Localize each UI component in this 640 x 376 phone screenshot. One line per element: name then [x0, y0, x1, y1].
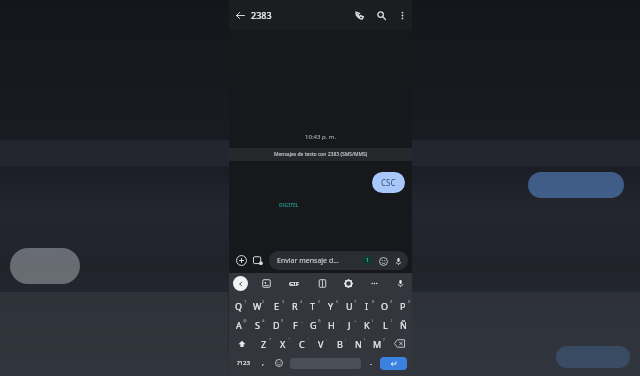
button[interactable]: R [286, 296, 304, 315]
staticText: @ [243, 318, 247, 323]
staticText: H [328, 319, 335, 331]
button[interactable]: GIF [285, 275, 303, 293]
button[interactable]: ?123 [232, 353, 255, 373]
button[interactable]: . [363, 353, 378, 373]
staticText: CSC [381, 177, 396, 188]
button[interactable]: D [267, 315, 286, 334]
button[interactable]: More [367, 276, 382, 291]
button[interactable]: B [330, 334, 349, 353]
staticText: 7 [354, 299, 357, 304]
button[interactable]: T [304, 296, 322, 315]
button[interactable]: Search [370, 4, 392, 26]
button[interactable]: I [358, 296, 376, 315]
staticText: T [310, 300, 316, 312]
button[interactable]: J [340, 315, 358, 334]
staticText: Q [235, 300, 243, 312]
staticText: & [318, 318, 321, 323]
staticText: # [262, 318, 265, 323]
button[interactable]: G [304, 315, 322, 334]
staticText: J [348, 319, 351, 331]
button[interactable]: More options [392, 5, 412, 25]
staticText: Mensajes de texto con 2383 (SMS/MMS) [274, 151, 368, 158]
staticText: 1 [366, 257, 369, 264]
button[interactable]: , [255, 353, 270, 373]
button[interactable]: H [322, 315, 340, 334]
staticText: 8 [372, 299, 375, 304]
staticText: 9 [390, 299, 393, 304]
button[interactable]: N [349, 334, 368, 353]
staticText: C [299, 338, 305, 350]
staticText: N [355, 338, 362, 350]
button[interactable]: C [292, 334, 311, 353]
button[interactable]: Ñ [394, 315, 412, 334]
staticText: + [354, 318, 357, 323]
button[interactable]: L [376, 315, 394, 334]
button[interactable]: W [248, 296, 267, 315]
staticText: Y [328, 300, 334, 312]
button[interactable]: E [267, 296, 286, 315]
button[interactable]: Settings [341, 276, 356, 291]
staticText: W [253, 300, 262, 312]
button[interactable]: U [340, 296, 358, 315]
button[interactable]: Expand [233, 276, 248, 291]
staticText: ?123 [237, 359, 250, 367]
staticText: 10:43 p. m. [229, 133, 412, 141]
staticText: ( [372, 318, 374, 323]
staticText: L [383, 319, 388, 331]
staticText: Enviar mensaje d... [277, 256, 339, 266]
button[interactable]: O [376, 296, 394, 315]
button[interactable]: Z [254, 334, 273, 353]
staticText: 2383 [251, 9, 272, 21]
staticText: E [274, 300, 280, 312]
button[interactable]: Enter [380, 357, 407, 370]
button[interactable]: Voice input [393, 276, 408, 291]
staticText: Z [261, 338, 267, 350]
button[interactable]: V [311, 334, 330, 353]
button[interactable]: A [229, 315, 248, 334]
staticText: 2 [262, 299, 265, 304]
staticText: O [381, 300, 389, 312]
button[interactable]: Enviar mensaje d... [269, 251, 408, 270]
button[interactable]: M [368, 334, 387, 353]
button[interactable]: CSC [372, 172, 405, 193]
staticText: ' [308, 337, 309, 342]
button[interactable]: K [358, 315, 376, 334]
button[interactable]: P [394, 296, 412, 315]
button[interactable]: Clipboard [315, 276, 330, 291]
button[interactable]: Stickers [259, 276, 274, 291]
button[interactable]: Back [229, 4, 251, 26]
button[interactable]: Q [229, 296, 248, 315]
staticText: X [280, 338, 286, 350]
staticText: 5 [318, 299, 321, 304]
staticText: " [288, 337, 290, 342]
button[interactable]: F [286, 315, 304, 334]
staticText: ) [391, 318, 393, 323]
button[interactable]: Backspace [387, 334, 412, 353]
staticText: DIGITEL [279, 202, 299, 209]
staticText: F [293, 319, 298, 331]
button[interactable]: Y [322, 296, 340, 315]
button[interactable]: Emoji [270, 353, 288, 373]
staticText: Ñ [400, 319, 407, 331]
button[interactable]: Emoji [377, 255, 389, 267]
staticText: P [400, 300, 406, 312]
staticText: 1 [244, 299, 247, 304]
button[interactable]: Voice [392, 255, 404, 267]
button[interactable]: S [248, 315, 267, 334]
staticText: - [337, 318, 339, 323]
button[interactable]: X [273, 334, 292, 353]
staticText: K [364, 319, 370, 331]
staticText: G [310, 319, 317, 331]
staticText: 3 [282, 299, 285, 304]
staticText: U [346, 300, 353, 312]
staticText: R [292, 300, 298, 312]
staticText: 0 [408, 299, 411, 304]
button[interactable]: Add [233, 252, 250, 269]
button[interactable]: Shift [229, 334, 254, 353]
staticText: 4 [300, 299, 303, 304]
button[interactable]: Gallery [250, 252, 267, 269]
staticText: ! [364, 337, 366, 342]
button[interactable]: Call [348, 4, 370, 26]
staticText: I [365, 300, 369, 312]
